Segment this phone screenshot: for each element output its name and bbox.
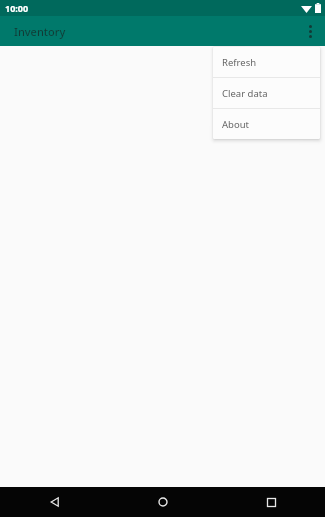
button[interactable]: Clear data xyxy=(213,78,320,108)
staticText: About xyxy=(222,118,249,131)
staticText: Clear data xyxy=(222,87,268,100)
button[interactable]: More options xyxy=(295,16,325,46)
button[interactable]: Home xyxy=(109,487,217,517)
staticText: 10:00 xyxy=(5,2,29,14)
staticText: Inventory xyxy=(14,24,66,39)
button[interactable]: Refresh xyxy=(213,47,320,77)
button[interactable]: About xyxy=(213,109,320,139)
button[interactable]: Back xyxy=(0,487,109,517)
staticText: Refresh xyxy=(222,56,257,69)
button[interactable]: Recent apps xyxy=(217,487,325,517)
